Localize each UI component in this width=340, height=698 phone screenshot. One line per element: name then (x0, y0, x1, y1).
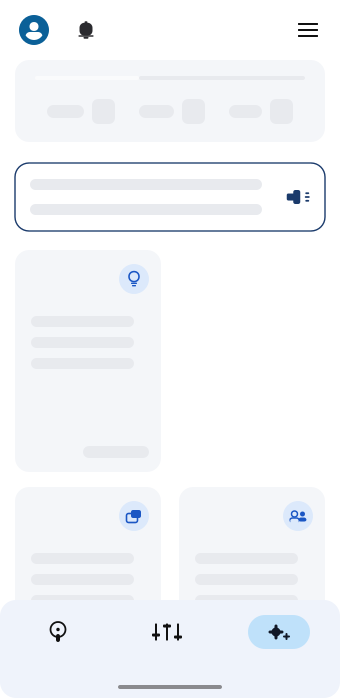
button[interactable]: Profile (15, 11, 53, 49)
button[interactable]: Messages (15, 487, 161, 637)
button[interactable]: Announcement (15, 163, 325, 231)
button[interactable]: Places (30, 610, 86, 654)
button[interactable]: Insights (15, 250, 161, 472)
button[interactable]: Community (179, 487, 325, 637)
button[interactable]: Assistant (248, 615, 310, 649)
button[interactable]: Filters (139, 610, 195, 654)
button[interactable]: Menu (291, 13, 325, 47)
button[interactable]: Notifications (69, 13, 103, 47)
